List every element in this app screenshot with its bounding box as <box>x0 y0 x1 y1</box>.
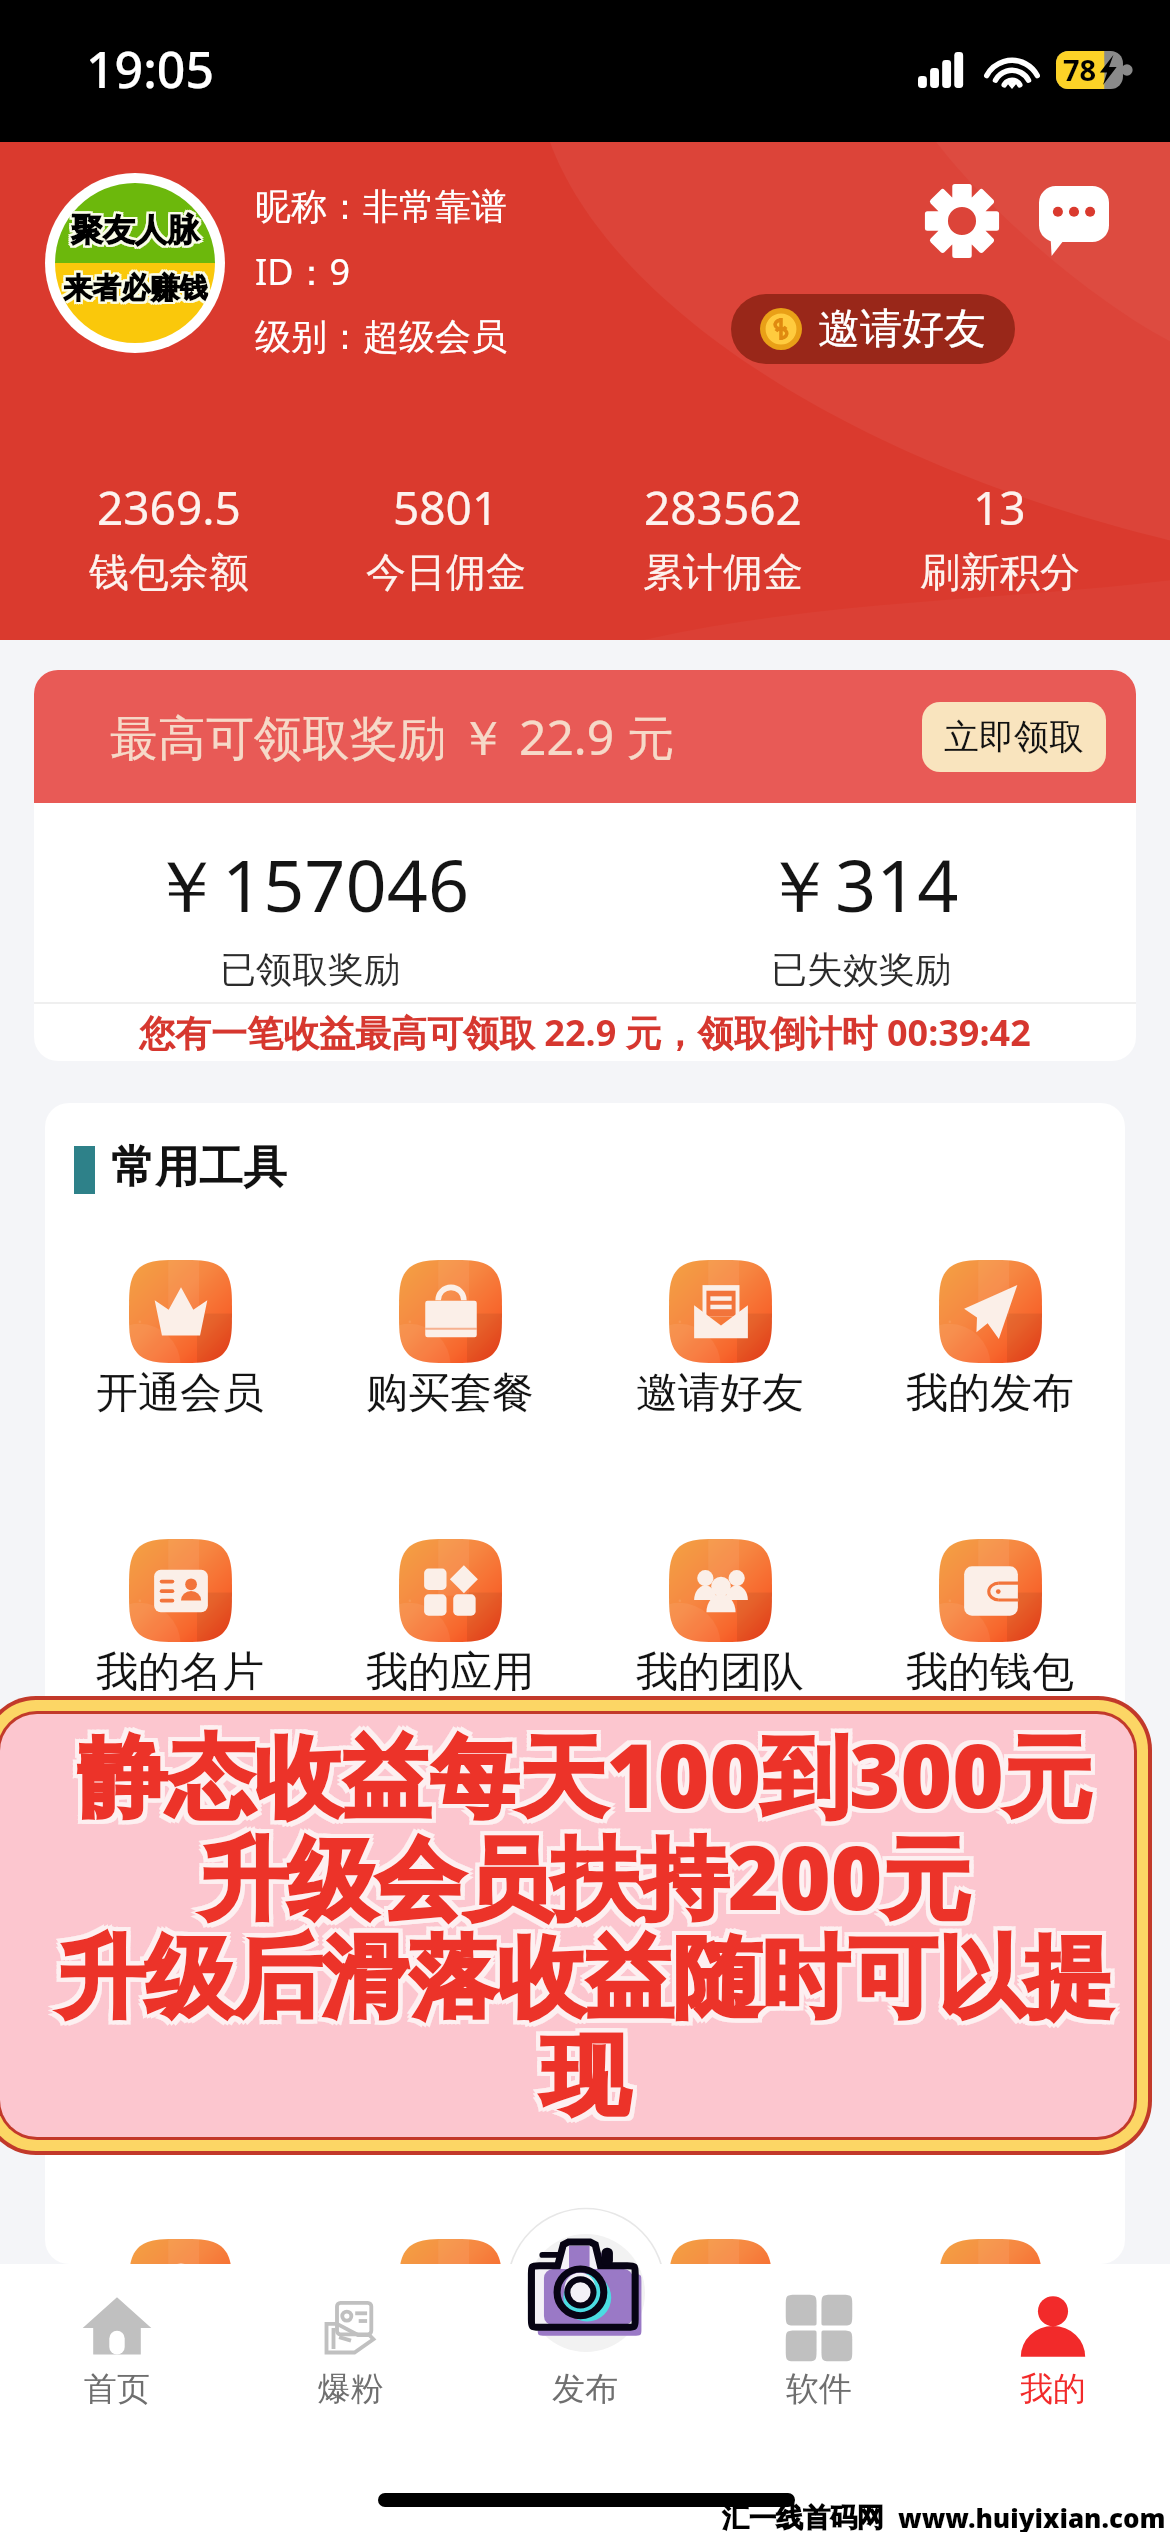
staticText: 5801 <box>393 476 499 539</box>
button[interactable]: 静态收益每天100到300元 升级会员扶持200元 升级后滑落收益随时可以提 现 <box>0 1714 1134 2137</box>
button[interactable] <box>855 2239 1125 2264</box>
button[interactable]: 我的团队 <box>585 1539 855 1699</box>
staticText: 静态收益每天100到300元 升级会员扶持200元 升级后滑落收益随时可以提 现 <box>14 1714 1134 2128</box>
button[interactable]: Publish <box>375 2242 795 2382</box>
button[interactable]: 我的发布 <box>855 1260 1125 1420</box>
staticText: 邀请好友 <box>636 1367 804 1420</box>
staticText: 283562 <box>644 476 802 539</box>
staticText: 2369.5 <box>97 476 241 539</box>
staticText: 静态收益每天100到300元 升级会员扶持200元 升级后滑落收益随时可以提 现 <box>14 1718 1134 2136</box>
staticText: ￥314 <box>763 835 959 933</box>
button[interactable]: 邀请好友 <box>731 294 1015 364</box>
button[interactable] <box>585 2239 855 2264</box>
staticText: 常用工具 <box>111 1140 287 1195</box>
staticText: 钱包余额 <box>89 547 249 597</box>
staticText: 我的团队 <box>636 1646 804 1699</box>
staticText: 购买套餐 <box>366 1367 534 1420</box>
staticText: 昵称：非常靠谱 <box>255 184 507 229</box>
button[interactable]: 283562 <box>584 476 861 597</box>
staticText: 您有一笔收益最高可领取 22.9 元，领取倒计时 00:39:42 <box>139 1008 1031 1057</box>
staticText: 来者必赚钱 <box>65 272 210 309</box>
button[interactable]: 2369.5 <box>30 476 307 597</box>
staticText: ID：9 <box>255 247 351 296</box>
button[interactable]: 爆粉 <box>234 2264 468 2452</box>
staticText: 78 <box>1063 50 1097 88</box>
staticText: 来者必赚钱 <box>63 270 208 307</box>
staticText: 聚友人脉 <box>69 210 197 250</box>
button[interactable]: 首页 <box>0 2264 234 2452</box>
button[interactable] <box>315 2239 585 2264</box>
button[interactable]: Settings <box>918 177 1006 265</box>
staticText: 我的 <box>1020 2368 1086 2410</box>
staticText: 聚友人脉 <box>71 210 199 250</box>
button[interactable]: 立即领取 <box>922 702 1106 772</box>
staticText: 我的应用 <box>366 1646 534 1699</box>
staticText: 累计佣金 <box>643 547 803 597</box>
button[interactable]: 我的名片 <box>45 1539 315 1699</box>
staticText: 爆粉 <box>318 2368 384 2410</box>
staticText: 聚友人脉 <box>69 208 197 248</box>
staticText: 静态收益每天100到300元 升级会员扶持200元 升级后滑落收益随时可以提 现 <box>18 1714 1134 2128</box>
staticText: 我的发布 <box>906 1367 1074 1420</box>
staticText: 邀请好友 <box>818 303 986 356</box>
staticText: 我的名片 <box>96 1646 264 1699</box>
staticText: 我的钱包 <box>906 1646 1074 1699</box>
button[interactable]: Messages <box>1030 177 1118 265</box>
staticText: 静态收益每天100到300元 升级会员扶持200元 升级后滑落收益随时可以提 现 <box>18 1718 1134 2136</box>
staticText: 立即领取 <box>944 715 1084 759</box>
staticText: 软件 <box>786 2368 852 2410</box>
button[interactable]: 开通会员 <box>45 1260 315 1420</box>
staticText: 19:05 <box>86 35 214 103</box>
staticText: 静态收益每天100到300元 升级会员扶持200元 升级后滑落收益随时可以提 现 <box>22 1714 1134 2128</box>
button[interactable]: 5801 <box>307 476 584 597</box>
button[interactable]: 发布 <box>468 2264 702 2452</box>
staticText: 来者必赚钱 <box>61 268 206 305</box>
button[interactable] <box>45 2239 315 2264</box>
staticText: 开通会员 <box>96 1367 264 1420</box>
staticText: 来者必赚钱 <box>65 268 210 305</box>
staticText: www.huiyixian.com <box>898 2500 1166 2532</box>
staticText: 刷新积分 <box>920 547 1080 597</box>
button[interactable]: 购买套餐 <box>315 1260 585 1420</box>
staticText: 聚友人脉 <box>71 208 199 248</box>
staticText: 级别：超级会员 <box>255 314 507 359</box>
button[interactable]: 我的 <box>936 2264 1170 2452</box>
staticText: 聚友人脉 <box>69 212 197 252</box>
staticText: 聚友人脉 <box>71 212 199 252</box>
staticText: 今日佣金 <box>366 547 526 597</box>
staticText: 静态收益每天100到300元 升级会员扶持200元 升级后滑落收益随时可以提 现 <box>14 1714 1134 2132</box>
staticText: ￥157046 <box>150 835 470 933</box>
staticText: 最高可领取奖励 ￥ 22.9 元 <box>110 704 675 770</box>
button[interactable]: 邀请好友 <box>585 1260 855 1420</box>
button[interactable]: 我的应用 <box>315 1539 585 1699</box>
staticText: 来者必赚钱 <box>61 272 206 309</box>
staticText: 静态收益每天100到300元 升级会员扶持200元 升级后滑落收益随时可以提 现 <box>22 1718 1134 2136</box>
button[interactable]: 13 <box>861 476 1138 597</box>
staticText: 来者必赚钱 <box>61 270 206 307</box>
staticText: 来者必赚钱 <box>63 268 208 305</box>
staticText: 聚友人脉 <box>73 212 201 252</box>
staticText: 来者必赚钱 <box>63 272 208 309</box>
staticText: 已失效奖励 <box>771 947 951 992</box>
staticText: 已领取奖励 <box>220 947 400 992</box>
staticText: 首页 <box>84 2368 150 2410</box>
staticText: 发布 <box>552 2368 618 2410</box>
staticText: 静态收益每天100到300元 升级会员扶持200元 升级后滑落收益随时可以提 现 <box>18 1714 1134 2132</box>
staticText: 来者必赚钱 <box>65 270 210 307</box>
button[interactable]: 软件 <box>702 2264 936 2452</box>
staticText: 汇一线首码网 <box>722 2501 884 2532</box>
staticText: 13 <box>973 476 1026 539</box>
button[interactable]: 我的钱包 <box>855 1539 1125 1699</box>
staticText: 聚友人脉 <box>73 208 201 248</box>
staticText: 静态收益每天100到300元 升级会员扶持200元 升级后滑落收益随时可以提 现 <box>22 1714 1134 2132</box>
staticText: 聚友人脉 <box>73 210 201 250</box>
